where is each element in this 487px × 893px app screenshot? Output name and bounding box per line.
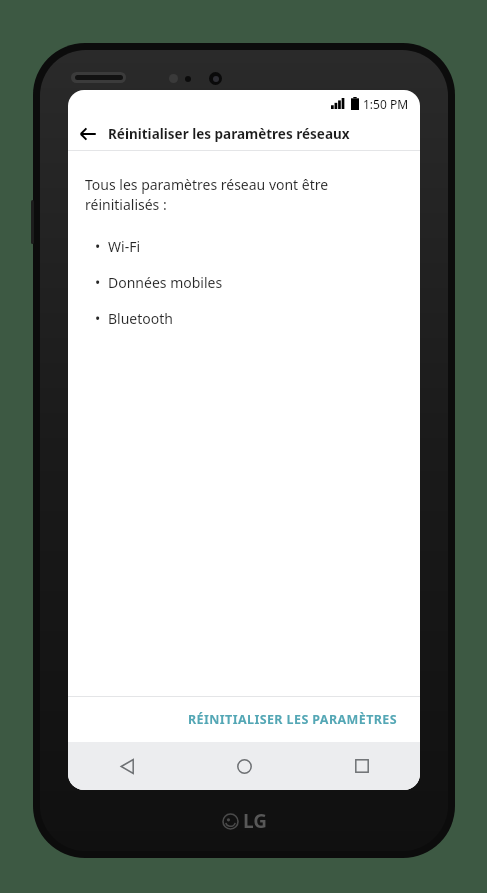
button[interactable]: Back	[68, 742, 186, 790]
staticText: Données mobiles	[108, 273, 223, 292]
staticText: Réinitialiser les paramètres réseaux	[108, 125, 350, 143]
button[interactable]: RÉINITIALISER LES PARAMÈTRES	[180, 703, 406, 736]
button[interactable]: Back	[68, 117, 108, 150]
staticText: •	[95, 309, 101, 328]
staticText: Tous les paramètres réseau vont être réi…	[85, 175, 329, 215]
staticText: 1:50 PM	[363, 96, 409, 112]
staticText: •	[95, 273, 101, 292]
staticText: LG	[243, 808, 267, 834]
button[interactable]: •	[85, 237, 403, 256]
button[interactable]: Recent apps	[303, 742, 420, 790]
button[interactable]: •	[85, 309, 403, 328]
button[interactable]: •	[85, 273, 403, 292]
staticText: Bluetooth	[108, 309, 173, 328]
staticText: RÉINITIALISER LES PARAMÈTRES	[188, 711, 398, 728]
staticText: Wi-Fi	[108, 237, 141, 256]
staticText: •	[95, 237, 101, 256]
button[interactable]: Home	[186, 742, 303, 790]
